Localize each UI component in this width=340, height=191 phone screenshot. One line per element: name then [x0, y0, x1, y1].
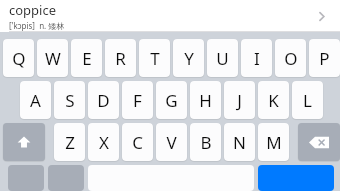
staticText: T [150, 47, 160, 70]
staticText: D [97, 89, 110, 112]
button[interactable]: B [190, 123, 221, 161]
button[interactable]: coppice [0, 0, 340, 32]
button[interactable]: U [207, 39, 238, 77]
staticText: L [303, 89, 312, 112]
staticText: S [65, 89, 75, 112]
staticText: B [200, 131, 212, 154]
button[interactable]: A [20, 81, 51, 119]
button[interactable]: J [224, 81, 255, 119]
staticText: P [319, 47, 330, 70]
staticText: A [30, 89, 41, 112]
button[interactable]: K [258, 81, 289, 119]
button[interactable]: O [275, 39, 306, 77]
staticText: K [268, 89, 279, 112]
staticText: F [133, 89, 142, 112]
staticText: Q [12, 47, 26, 70]
button[interactable]: N [224, 123, 255, 161]
staticText: Z [65, 131, 75, 154]
staticText: M [266, 131, 282, 154]
button[interactable]: I [241, 39, 272, 77]
staticText: I [254, 47, 260, 70]
button[interactable]: M [258, 123, 289, 161]
staticText: N [233, 131, 246, 154]
button[interactable]: X [88, 123, 119, 161]
button[interactable]: D [88, 81, 119, 119]
button[interactable]: P [309, 39, 340, 77]
staticText: ['kɔpis] n. 矮林 [9, 20, 65, 31]
button[interactable]: G [156, 81, 187, 119]
staticText: V [166, 131, 177, 154]
staticText: R [115, 47, 126, 70]
button[interactable]: E [71, 39, 102, 77]
button[interactable]: T [139, 39, 170, 77]
button[interactable]: S [54, 81, 85, 119]
button[interactable]: Numbers and symbols [8, 165, 44, 191]
button[interactable]: C [122, 123, 153, 161]
staticText: C [132, 131, 143, 154]
staticText: U [216, 47, 229, 70]
staticText: O [284, 47, 298, 70]
button[interactable]: Shift [3, 123, 45, 161]
button[interactable]: H [190, 81, 221, 119]
staticText: G [165, 89, 178, 112]
button[interactable]: L [292, 81, 323, 119]
button[interactable]: W [37, 39, 68, 77]
staticText: X [99, 131, 109, 154]
button[interactable]: Backspace [298, 123, 340, 161]
staticText: coppice [9, 1, 57, 19]
staticText: E [82, 47, 92, 70]
button[interactable]: R [105, 39, 136, 77]
button[interactable]: Y [173, 39, 204, 77]
staticText: W [45, 47, 61, 70]
staticText: Y [184, 47, 194, 70]
button[interactable]: Switch keyboard [48, 165, 84, 191]
staticText: J [237, 89, 242, 112]
button[interactable]: Z [54, 123, 85, 161]
button[interactable]: Q [3, 39, 34, 77]
button[interactable]: Open dictionary entry [309, 4, 333, 28]
button[interactable]: Return [258, 165, 334, 191]
button[interactable]: V [156, 123, 187, 161]
button[interactable]: F [122, 81, 153, 119]
staticText: H [199, 89, 212, 112]
